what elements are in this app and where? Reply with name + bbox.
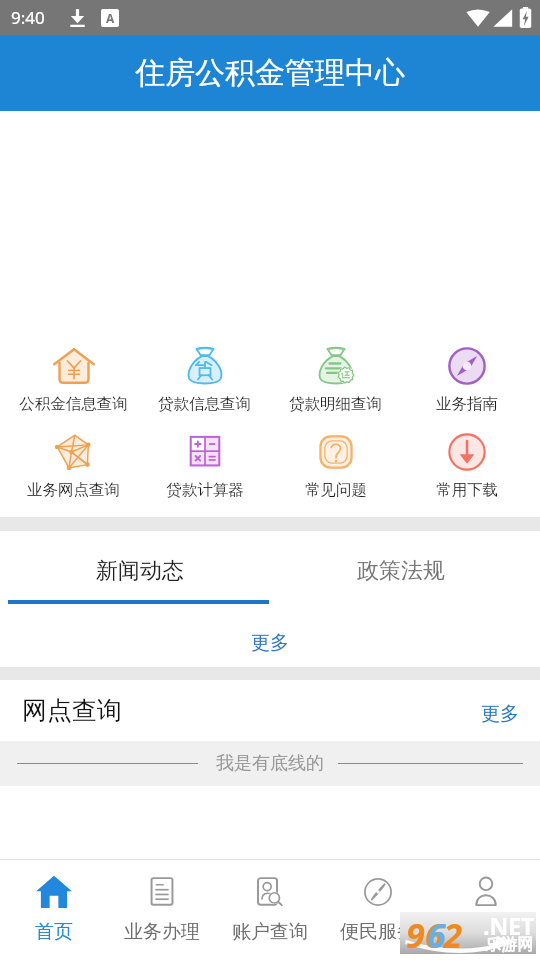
staticText: 常用下载 <box>436 480 498 500</box>
button[interactable]: 公积金信息查询 <box>8 337 139 423</box>
button[interactable]: 更多 <box>0 604 540 667</box>
staticText: 公积金信息查询 <box>19 394 128 414</box>
other: 公积金信息查询 <box>53 345 95 387</box>
staticText: 更多 <box>251 631 289 655</box>
other: 常见问题 <box>315 431 357 473</box>
staticText: 业务指南 <box>436 394 498 414</box>
button[interactable]: 业务办理 <box>108 860 216 960</box>
button[interactable]: 新闻动态 <box>0 537 270 604</box>
other: 首页 <box>35 873 73 911</box>
other: 业务网点查询 <box>53 431 95 473</box>
button[interactable]: 业务网点查询 <box>8 423 139 517</box>
button[interactable]: 业务指南 <box>401 337 532 423</box>
staticText: 网点查询 <box>22 695 122 726</box>
other: 账户查询 <box>251 873 289 911</box>
other: 业务办理 <box>143 873 181 911</box>
staticText: A <box>106 10 115 26</box>
button[interactable]: 首页 <box>0 860 108 960</box>
staticText: 贷款计算器 <box>166 480 244 500</box>
staticText: 便民服务 <box>340 920 416 944</box>
button[interactable]: 我的 <box>432 860 540 960</box>
staticText: 贷款信息查询 <box>158 394 251 414</box>
staticText: 9:40 <box>11 6 45 29</box>
button[interactable]: 更多 <box>465 696 540 726</box>
other: 便民服务 <box>359 873 397 911</box>
staticText: 业务网点查询 <box>27 480 120 500</box>
button[interactable]: 贷款信息查询 <box>139 337 270 423</box>
button[interactable]: 常见问题 <box>270 423 401 517</box>
staticText: 首页 <box>35 920 73 944</box>
other: 常用下载 <box>446 431 488 473</box>
staticText: 新闻动态 <box>96 557 184 585</box>
button[interactable]: 贷款明细查询 <box>270 337 401 423</box>
staticText: 我的 <box>467 920 505 944</box>
staticText: 贷款明细查询 <box>289 394 382 414</box>
staticText: 6 <box>427 912 446 954</box>
other: 我的 <box>467 873 505 911</box>
staticText: 账户查询 <box>232 920 308 944</box>
staticText: 住房公积金管理中心 <box>135 54 405 92</box>
button[interactable]: 账户查询 <box>216 860 324 960</box>
other: 贷款明细查询 <box>315 345 357 387</box>
staticText: 乐游网 <box>485 935 533 955</box>
staticText: 更多 <box>481 702 519 726</box>
button[interactable]: 常用下载 <box>401 423 532 517</box>
button[interactable]: 贷款计算器 <box>139 423 270 517</box>
button[interactable]: 政策法规 <box>270 537 540 604</box>
staticText: 常见问题 <box>305 480 367 500</box>
staticText: 962 <box>406 912 463 954</box>
other: 贷款信息查询 <box>184 345 226 387</box>
other: 贷款计算器 <box>184 431 226 473</box>
staticText: 业务办理 <box>124 920 200 944</box>
staticText: 我是有底线的 <box>216 752 324 775</box>
button[interactable]: 便民服务 <box>324 860 432 960</box>
staticText: 政策法规 <box>357 557 445 585</box>
other: 业务指南 <box>446 345 488 387</box>
staticText: .NET <box>483 910 535 941</box>
